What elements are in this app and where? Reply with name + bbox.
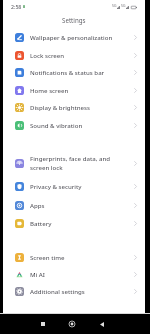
- button[interactable]: Additional settings: [3, 282, 145, 300]
- button[interactable]: Mi AI: [3, 265, 145, 283]
- staticText: Sound & vibration: [30, 121, 134, 129]
- button[interactable]: Screen time: [3, 248, 145, 266]
- button[interactable]: Sound & vibration: [3, 116, 145, 134]
- staticText: Additional settings: [30, 287, 134, 295]
- staticText: 5G: [112, 3, 117, 8]
- button[interactable]: Privacy & security: [3, 177, 145, 195]
- button[interactable]: Home screen: [3, 81, 145, 99]
- staticText: Mi AI: [30, 270, 134, 278]
- button[interactable]: Apps: [3, 196, 145, 214]
- button[interactable]: Back: [96, 318, 108, 330]
- button[interactable]: Recents: [37, 318, 49, 330]
- staticText: Display & brightness: [30, 103, 134, 111]
- staticText: Battery: [30, 219, 134, 227]
- button[interactable]: Notifications & status bar: [3, 63, 145, 81]
- staticText: Screen time: [30, 253, 134, 261]
- staticText: Notifications & status bar: [30, 68, 134, 76]
- button[interactable]: Display & brightness: [3, 98, 145, 116]
- button[interactable]: Fingerprints, face data, and screen lock: [3, 149, 145, 177]
- staticText: Wallpaper & personalization: [30, 33, 134, 41]
- button[interactable]: Battery: [3, 214, 145, 232]
- button[interactable]: Lock screen: [3, 46, 145, 64]
- staticText: 5G: [121, 3, 126, 8]
- staticText: Fingerprints, face data, and screen lock: [30, 154, 134, 172]
- staticText: Apps: [30, 201, 134, 209]
- button[interactable]: Wallpaper & personalization: [3, 28, 145, 46]
- staticText: Home screen: [30, 86, 134, 94]
- button[interactable]: Home: [66, 318, 78, 330]
- staticText: Lock screen: [30, 51, 134, 59]
- staticText: 2:58: [11, 3, 22, 10]
- staticText: Settings: [62, 16, 86, 24]
- staticText: Privacy & security: [30, 182, 134, 190]
